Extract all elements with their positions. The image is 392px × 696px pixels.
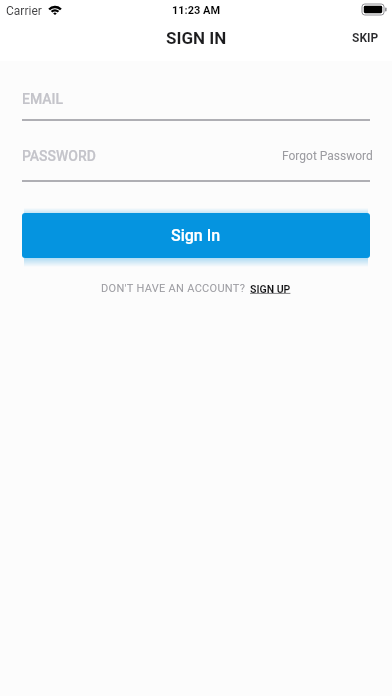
button[interactable]: EMAIL: [22, 89, 370, 108]
button[interactable]: Forgot Password: [282, 149, 373, 163]
staticText: Carrier: [6, 4, 42, 18]
staticText: 11:23 AM: [172, 4, 221, 17]
staticText: Sign In: [171, 226, 221, 245]
button[interactable]: PASSWORD: [22, 148, 96, 164]
staticText: Forgot Password: [282, 149, 373, 163]
staticText: SIGN UP: [250, 283, 291, 295]
staticText: SIGN IN: [166, 28, 227, 48]
staticText: PASSWORD: [22, 148, 96, 164]
staticText: SKIP: [352, 31, 379, 45]
button[interactable]: SKIP: [349, 28, 382, 48]
button[interactable]: SIGN UP: [250, 283, 291, 295]
staticText: EMAIL: [22, 91, 64, 107]
staticText: DON'T HAVE AN ACCOUNT?: [101, 282, 246, 295]
button[interactable]: Sign In: [22, 213, 370, 258]
